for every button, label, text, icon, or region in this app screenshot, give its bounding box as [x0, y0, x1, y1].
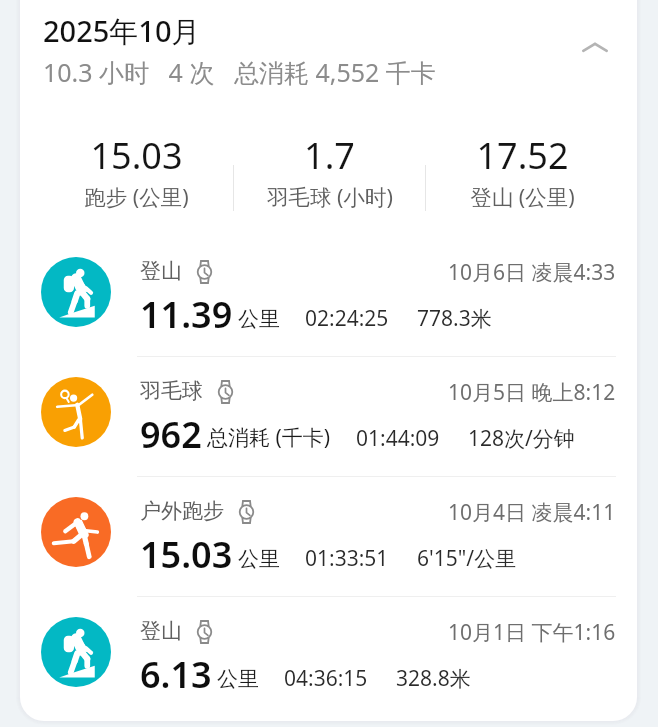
staticText: 登山 (公里) [470, 182, 575, 211]
staticText: 10月6日 凌晨4:33 [448, 258, 616, 287]
staticText: 778.3米 [417, 304, 492, 333]
staticText: 01:33:51 [305, 544, 389, 573]
staticText: 10月1日 下午1:16 [448, 618, 616, 647]
staticText: 羽毛球 (小时) [267, 182, 393, 211]
staticText: 15.03 [140, 530, 233, 579]
button[interactable]: 登山 [0, 592, 658, 712]
staticText: 2025年10月 [43, 11, 201, 51]
staticText: 04:36:15 [284, 664, 368, 693]
staticText: 跑步 (公里) [84, 182, 189, 211]
staticText: 登山 [140, 618, 182, 644]
staticText: 15.03 [90, 131, 183, 180]
staticText: 户外跑步 [140, 498, 224, 524]
staticText: 02:24:25 [305, 304, 389, 333]
staticText: 328.8米 [396, 664, 471, 693]
button[interactable]: 15.03 [40, 131, 233, 211]
staticText: 128次/分钟 [468, 424, 575, 453]
staticText: 01:44:09 [356, 424, 440, 453]
staticText: 17.52 [476, 131, 569, 180]
staticText: 公里 [217, 666, 259, 692]
staticText: 10月4日 凌晨4:11 [448, 498, 616, 527]
staticText: 962 [140, 410, 202, 459]
button[interactable]: 2025年10月 [20, 0, 560, 110]
button[interactable]: Collapse [573, 26, 617, 70]
staticText: 羽毛球 [140, 378, 203, 404]
button[interactable]: 17.52 [426, 131, 619, 211]
staticText: 公里 [238, 306, 280, 332]
staticText: 11.39 [140, 290, 233, 339]
button[interactable]: 1.7 [233, 131, 426, 211]
button[interactable]: 登山 [0, 232, 658, 352]
staticText: 10月5日 晚上8:12 [448, 378, 616, 407]
staticText: 登山 [140, 258, 182, 284]
button[interactable]: 户外跑步 [0, 472, 658, 592]
staticText: 公里 [238, 546, 280, 572]
button[interactable]: 羽毛球 [0, 352, 658, 472]
staticText: 10.3 小时 4 次 总消耗 4,552 千卡 [43, 55, 436, 89]
staticText: 1.7 [304, 131, 355, 180]
staticText: 6'15"/公里 [417, 544, 517, 573]
staticText: 6.13 [140, 650, 212, 699]
staticText: 总消耗 (千卡) [207, 423, 331, 452]
